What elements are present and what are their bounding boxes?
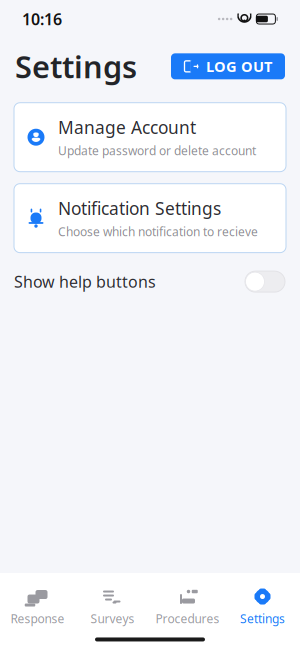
staticText: Manage Account bbox=[58, 116, 196, 139]
button[interactable]: Show help buttons bbox=[0, 253, 300, 301]
button[interactable]: Manage Account bbox=[14, 103, 286, 172]
staticText: Update password or delete account bbox=[58, 143, 256, 159]
staticText: 10:16 bbox=[22, 8, 62, 30]
staticText: Show help buttons bbox=[14, 271, 156, 292]
staticText: Notification Settings bbox=[58, 197, 221, 220]
staticText: Response bbox=[10, 610, 64, 626]
button[interactable]: Response bbox=[0, 584, 75, 629]
staticText: Choose which notification to recieve bbox=[58, 224, 258, 240]
staticText: LOG OUT bbox=[206, 57, 272, 76]
button[interactable]: Settings bbox=[225, 584, 300, 629]
button[interactable]: Notification Settings bbox=[14, 184, 286, 253]
staticText: Procedures bbox=[155, 610, 219, 626]
staticText: Settings bbox=[15, 46, 137, 87]
staticText: Surveys bbox=[90, 610, 134, 626]
staticText: Settings bbox=[240, 610, 285, 626]
button[interactable]: Procedures bbox=[150, 584, 225, 629]
button[interactable]: LOG OUT bbox=[171, 53, 285, 79]
button[interactable]: Surveys bbox=[75, 584, 150, 629]
